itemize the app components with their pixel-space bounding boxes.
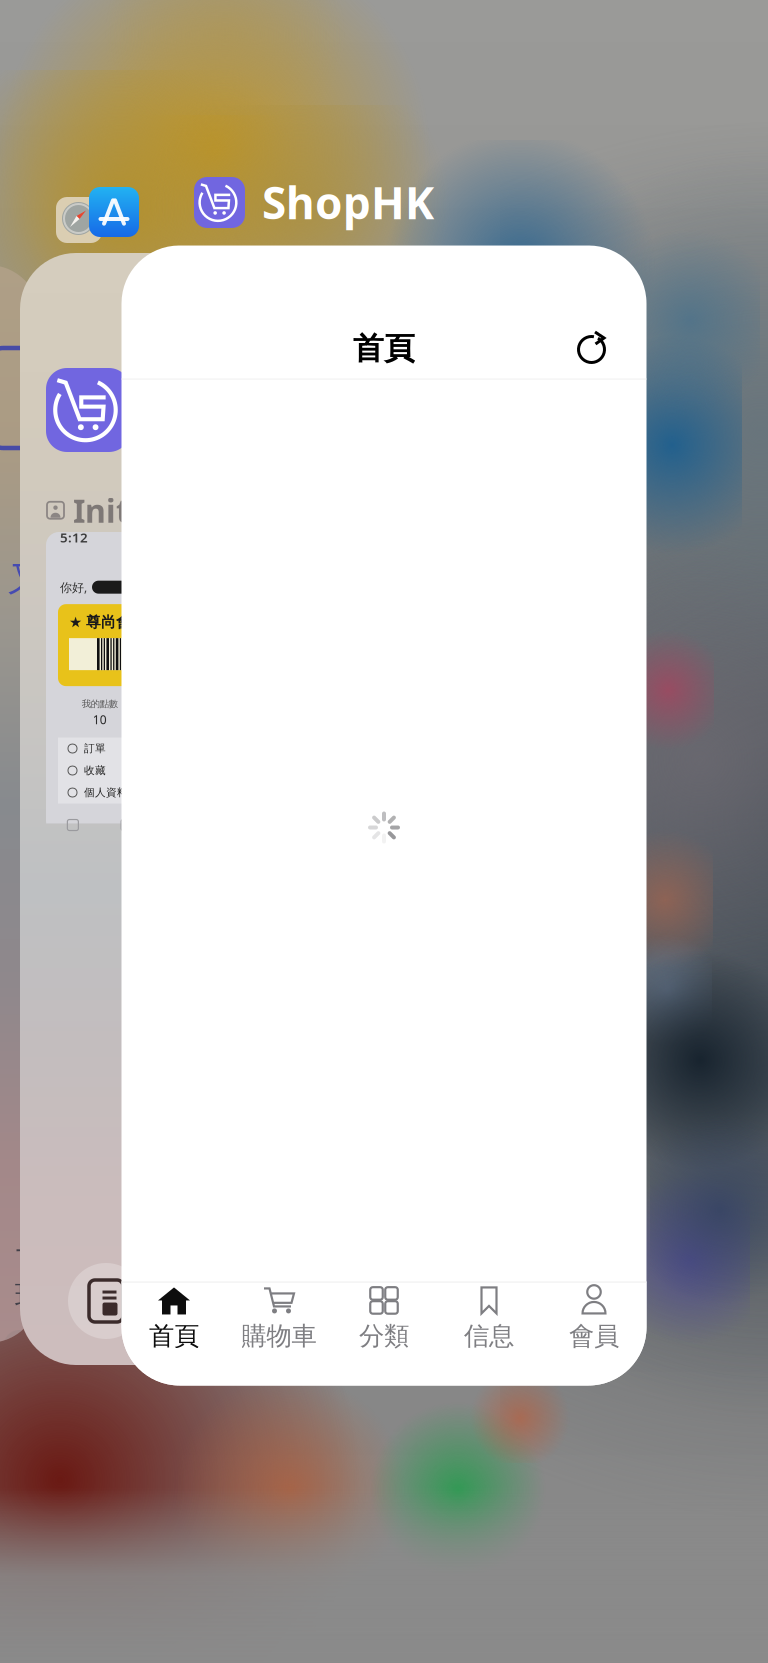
staticText: ★ — [69, 614, 82, 630]
staticText: 你好, — [60, 579, 87, 595]
staticText: 首頁 — [149, 1320, 199, 1351]
staticText: 5:12 — [60, 528, 88, 546]
staticText: ShopHK — [262, 173, 434, 231]
staticText: 专 — [16, 1235, 45, 1271]
staticText: 首頁 — [353, 330, 415, 367]
staticText: 收藏 — [84, 764, 106, 777]
staticText: 现 — [15, 1278, 44, 1314]
staticText: 個人資料 — [84, 786, 128, 799]
button[interactable]: Refresh — [571, 327, 611, 367]
button[interactable]: 會員 — [541, 1282, 646, 1352]
staticText: 會員 — [569, 1320, 619, 1351]
staticText: 訂單 — [84, 742, 106, 755]
button[interactable]: 首頁 — [121, 1282, 226, 1352]
staticText: 又 — [8, 558, 43, 601]
staticText: Initial — [73, 489, 169, 531]
button[interactable]: 購物車 — [226, 1282, 331, 1352]
staticText: 信息 — [464, 1320, 514, 1351]
staticText: 尊尚會員 — [86, 613, 146, 631]
staticText: 購物車 — [241, 1320, 316, 1351]
staticText: 我的點數 — [82, 698, 118, 710]
button[interactable]: 信息 — [436, 1282, 541, 1352]
staticText: 分類 — [359, 1320, 409, 1351]
button[interactable]: 分類 — [331, 1282, 436, 1352]
staticText: 10 — [93, 712, 107, 727]
